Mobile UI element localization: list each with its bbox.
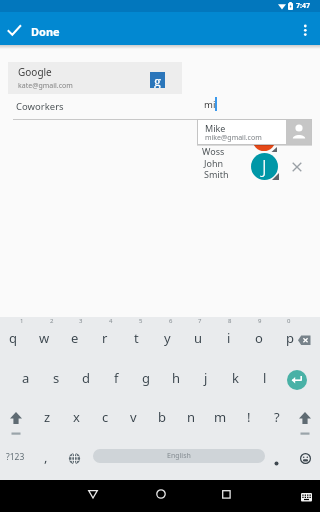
staticText: 4 [109, 317, 113, 325]
button[interactable]: Google [8, 62, 182, 94]
staticText: Google [18, 65, 52, 79]
button[interactable] [295, 403, 317, 433]
button[interactable]: e [61, 321, 89, 355]
button[interactable]: o [245, 321, 273, 355]
staticText: 3 [79, 317, 83, 325]
staticText: 2 [50, 317, 54, 325]
button[interactable]: , [38, 447, 54, 467]
button[interactable]: d [72, 361, 100, 395]
staticText: x [73, 408, 80, 426]
staticText: John [204, 157, 224, 169]
button[interactable] [287, 370, 307, 390]
staticText: m [214, 408, 227, 426]
button[interactable] [294, 325, 320, 351]
button[interactable]: w [30, 321, 58, 355]
button[interactable] [296, 448, 317, 469]
button[interactable]: Mike [197, 119, 312, 145]
button[interactable]: p [276, 321, 304, 355]
staticText: l [263, 369, 267, 387]
staticText: , [44, 448, 48, 466]
staticText: J [262, 154, 267, 179]
staticText: mi [204, 98, 216, 111]
button[interactable] [78, 482, 108, 510]
button[interactable]: f [102, 361, 130, 395]
button[interactable]: v [120, 400, 146, 434]
button[interactable]: x [63, 400, 89, 434]
staticText: y [164, 329, 171, 347]
button[interactable]: m [207, 400, 233, 434]
staticText: c [102, 408, 109, 426]
staticText: s [53, 369, 60, 387]
button[interactable]: h [162, 361, 190, 395]
staticText: 9 [258, 317, 262, 325]
staticText: g [142, 369, 150, 387]
button[interactable] [0, 12, 70, 45]
staticText: i [227, 329, 231, 347]
button[interactable] [296, 14, 316, 43]
button[interactable]: q [0, 321, 27, 355]
staticText: u [194, 329, 203, 347]
staticText: 7:47 [296, 1, 310, 11]
button[interactable] [6, 403, 28, 433]
staticText: 8 [228, 317, 232, 325]
staticText: z [44, 408, 51, 426]
staticText: t [134, 329, 139, 347]
staticText: ? [274, 408, 280, 426]
button[interactable]: g [132, 361, 160, 395]
button[interactable] [212, 482, 242, 510]
staticText: b [158, 408, 166, 426]
button[interactable]: ! [236, 400, 262, 434]
staticText: ! [247, 408, 251, 426]
staticText: kate@gmail.com [18, 81, 73, 91]
button[interactable]: j [192, 361, 220, 395]
staticText: o [255, 329, 263, 347]
button[interactable] [296, 488, 316, 505]
button[interactable]: l [251, 361, 279, 395]
staticText: n [187, 408, 196, 426]
staticText: v [130, 408, 137, 426]
staticText: 6 [169, 317, 173, 325]
staticText: Done [31, 24, 60, 39]
staticText: 0 [287, 317, 291, 325]
staticText: f [114, 369, 119, 387]
button[interactable]: t [122, 321, 150, 355]
staticText: w [39, 329, 50, 347]
button[interactable]: ? [264, 400, 290, 434]
button[interactable]: s [42, 361, 70, 395]
staticText: p [286, 329, 294, 347]
button[interactable]: i [215, 321, 243, 355]
staticText: Coworkers [16, 100, 64, 113]
staticText: Mike [205, 122, 226, 134]
staticText: d [82, 369, 90, 387]
staticText: g [154, 72, 161, 88]
staticText: j [204, 369, 208, 387]
button[interactable] [289, 158, 305, 174]
staticText: Smith [204, 168, 229, 180]
staticText: mike@gmail.com [205, 133, 262, 143]
staticText: ?123 [6, 451, 25, 463]
staticText: 5 [139, 317, 143, 325]
button[interactable] [268, 448, 286, 469]
button[interactable]: k [221, 361, 249, 395]
button[interactable]: J [251, 153, 278, 180]
button[interactable]: a [12, 361, 40, 395]
button[interactable]: n [178, 400, 204, 434]
button[interactable]: English [93, 449, 265, 463]
button[interactable] [64, 448, 85, 469]
staticText: h [172, 369, 181, 387]
button[interactable] [146, 482, 176, 510]
button[interactable]: ?123 [0, 447, 30, 467]
button[interactable]: y [153, 321, 181, 355]
button[interactable]: u [184, 321, 212, 355]
button[interactable]: r [91, 321, 119, 355]
button[interactable]: c [92, 400, 118, 434]
staticText: q [9, 329, 17, 347]
staticText: English [167, 451, 191, 461]
staticText: 1 [20, 317, 24, 325]
button[interactable]: z [34, 400, 60, 434]
staticText: Woss [202, 145, 225, 157]
button[interactable]: b [149, 400, 175, 434]
staticText: k [232, 369, 239, 387]
staticText: e [71, 329, 79, 347]
staticText: 7 [198, 317, 202, 325]
